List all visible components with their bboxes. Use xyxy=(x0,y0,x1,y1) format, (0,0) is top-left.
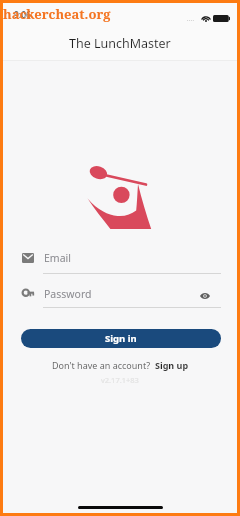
staticText: The LunchMaster xyxy=(69,35,171,52)
staticText: Don't have an account? xyxy=(52,359,155,371)
staticText: Sign in xyxy=(105,332,137,345)
button[interactable]: Password xyxy=(3,285,237,311)
button[interactable]: Email xyxy=(3,249,237,275)
button[interactable]: Sign in xyxy=(21,329,221,348)
button[interactable]: Sign up xyxy=(155,359,189,371)
staticText: 9:06 xyxy=(14,9,31,21)
staticText: Password xyxy=(44,287,92,301)
staticText: Sign up xyxy=(155,359,189,371)
staticText: v2.17.1+83 xyxy=(101,375,139,385)
staticText: Email xyxy=(44,251,71,265)
button[interactable]: Show password xyxy=(196,287,214,305)
staticText: hackercheat.org xyxy=(3,5,111,23)
